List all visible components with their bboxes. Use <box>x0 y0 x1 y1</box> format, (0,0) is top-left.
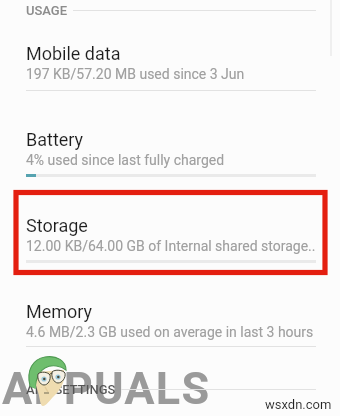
button[interactable]: Storage <box>0 201 340 275</box>
staticText: 197 KB/57.20 MB used since 3 Jun <box>26 66 340 82</box>
staticText: 4% used since last fully charged <box>26 152 340 168</box>
staticText: Battery <box>26 129 84 150</box>
button[interactable]: Mobile data <box>0 29 340 103</box>
button[interactable]: Battery <box>0 115 340 189</box>
staticText: APPUALS <box>2 362 211 415</box>
staticText: APP SETTINGS <box>26 382 116 397</box>
staticText: USAGE <box>26 3 68 18</box>
button[interactable]: Memory <box>0 287 340 361</box>
staticText: Mobile data <box>26 43 121 64</box>
staticText: Storage <box>26 215 88 236</box>
staticText: Memory <box>26 301 93 322</box>
staticText: wsxdn.com <box>265 397 332 412</box>
staticText: 4.6 MB/2.3 GB used on average in last 3 … <box>26 324 340 340</box>
staticText: 12.00 KB/64.00 GB of Internal shared sto… <box>26 238 340 254</box>
